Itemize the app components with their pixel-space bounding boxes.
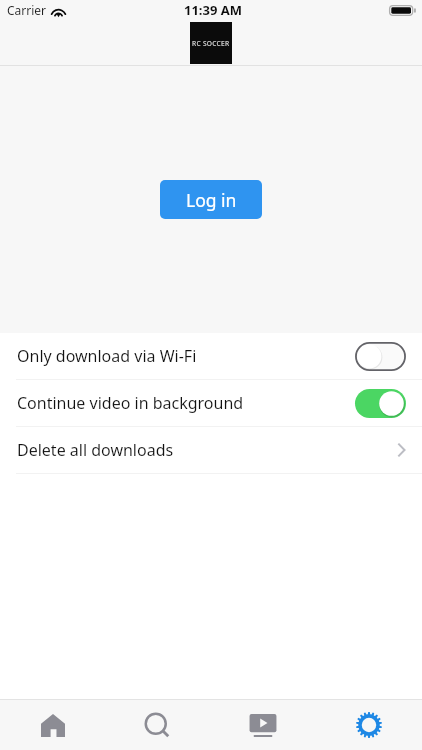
button[interactable]: RC SOCCER bbox=[190, 22, 232, 64]
button[interactable]: Toggle off bbox=[355, 341, 406, 371]
button[interactable]: Delete all downloads bbox=[0, 427, 422, 473]
button[interactable]: Videos bbox=[210, 700, 316, 750]
staticText: Continue video in background bbox=[17, 392, 244, 414]
staticText: Only download via Wi-Fi bbox=[17, 345, 197, 367]
button[interactable]: Continue video in background bbox=[0, 380, 422, 426]
button[interactable]: Log in bbox=[160, 180, 262, 219]
button[interactable]: Search bbox=[105, 700, 210, 750]
staticText: RC SOCCER bbox=[192, 39, 230, 48]
button[interactable]: Only download via Wi-Fi bbox=[0, 333, 422, 379]
button[interactable]: Settings bbox=[316, 700, 422, 750]
button[interactable]: Toggle on bbox=[355, 388, 406, 418]
other: Delete all downloads bbox=[394, 440, 406, 460]
staticText: Delete all downloads bbox=[17, 439, 174, 461]
staticText: Carrier bbox=[7, 2, 47, 18]
staticText: 11:39 AM bbox=[184, 1, 243, 19]
button[interactable]: Home bbox=[0, 700, 105, 750]
staticText: Log in bbox=[186, 188, 237, 212]
